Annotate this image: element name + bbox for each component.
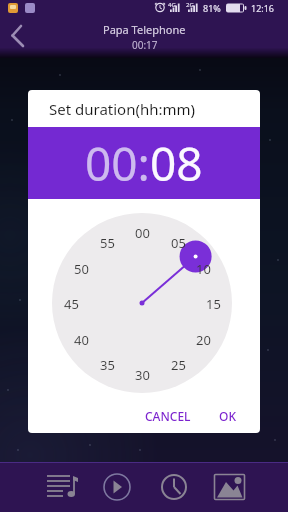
staticText: 00 [135, 224, 150, 240]
staticText: 00:17 [132, 38, 158, 52]
staticText: 25 [171, 356, 186, 372]
staticText: 30 [135, 366, 150, 382]
button[interactable] [213, 470, 247, 504]
staticText: 10 [196, 260, 211, 276]
staticText: 45 [64, 295, 79, 311]
staticText: 00: [85, 132, 150, 195]
staticText: 35 [100, 356, 115, 372]
staticText: OK [219, 408, 236, 424]
button[interactable]: CANCEL [137, 402, 199, 430]
staticText: 81% [203, 2, 221, 14]
staticText: 20 [196, 331, 211, 347]
button[interactable] [0, 21, 36, 57]
staticText: 08 [150, 132, 203, 195]
staticText: 15 [206, 295, 221, 311]
staticText: 2G [186, 1, 194, 9]
staticText: Set duration(hh:mm) [49, 99, 196, 119]
staticText: 05 [171, 234, 186, 250]
button[interactable] [44, 470, 78, 504]
staticText: 40 [74, 331, 89, 347]
staticText: 50 [74, 260, 89, 276]
staticText: 4G [168, 1, 176, 9]
button[interactable]: OK [211, 402, 244, 430]
staticText: 12:16 [251, 2, 275, 14]
button[interactable] [157, 470, 191, 504]
button[interactable] [100, 470, 134, 504]
staticText: CANCEL [145, 408, 191, 424]
staticText: Papa Telephone [103, 22, 186, 37]
staticText: 55 [100, 234, 115, 250]
